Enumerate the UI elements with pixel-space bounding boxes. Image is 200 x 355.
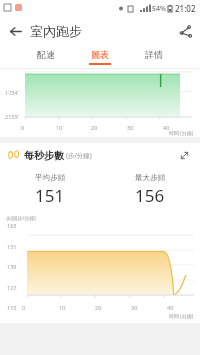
staticText: 0 — [22, 304, 26, 311]
staticText: 40 — [163, 124, 170, 131]
staticText: 151 — [7, 243, 17, 250]
staticText: 151 — [35, 184, 65, 207]
staticText: 139 — [7, 263, 17, 270]
staticText: (步/分鐘) — [66, 151, 92, 160]
staticText: 2135' — [5, 113, 19, 120]
button[interactable]: Back — [0, 16, 30, 46]
button[interactable]: Expand — [176, 147, 192, 163]
staticText: 0 — [21, 124, 25, 131]
staticText: 30 — [131, 304, 138, 311]
staticText: 10 — [59, 304, 66, 311]
staticText: 20 — [95, 304, 102, 311]
button[interactable]: 圖表 — [85, 49, 115, 65]
staticText: 115 — [7, 304, 17, 311]
staticText: 每秒步數 — [24, 149, 64, 162]
staticText: 配速 — [37, 49, 55, 60]
staticText: 10 — [56, 124, 63, 131]
staticText: 21:02 — [175, 3, 196, 14]
staticText: 最大步頻 — [135, 173, 165, 182]
staticText: 平均步頻 — [35, 173, 65, 182]
staticText: 127 — [7, 284, 17, 291]
staticText: 1734' — [5, 89, 19, 96]
staticText: 156 — [135, 184, 165, 207]
staticText: 40 — [167, 304, 174, 311]
button[interactable]: 配速 — [31, 49, 61, 65]
staticText: 54% — [152, 4, 166, 14]
staticText: 圖表 — [91, 49, 109, 60]
staticText: 步頻(步/分鐘) — [6, 215, 36, 222]
staticText: 室內跑步 — [30, 23, 82, 39]
staticText: 時間 (分鐘) — [169, 130, 194, 137]
button[interactable]: 每秒步數 — [0, 143, 200, 167]
staticText: 30 — [127, 124, 134, 131]
button[interactable]: 詳情 — [139, 49, 169, 65]
button[interactable]: Share — [170, 16, 200, 46]
staticText: 20 — [91, 124, 98, 131]
staticText: 詳情 — [145, 49, 163, 60]
staticText: 163 — [7, 222, 17, 229]
staticText: 時間 (分鐘) — [169, 313, 194, 320]
